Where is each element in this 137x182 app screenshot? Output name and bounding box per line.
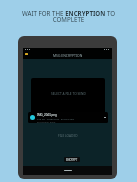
staticText: MSG ENCRYPTION <box>53 53 83 58</box>
button[interactable]: IMG_2043.png <box>28 112 108 123</box>
staticText: FILE LOADED <box>58 134 78 138</box>
staticText: 248 KB · image/png · ENCRYPTED <box>37 117 75 120</box>
button[interactable]: Encryption lock <box>25 53 28 55</box>
button[interactable]: ENCRYPT <box>64 157 80 162</box>
staticText: encryption done <box>37 120 56 123</box>
staticText: IMG_2043.png <box>37 113 57 117</box>
staticText: ENCRYPT <box>66 158 78 162</box>
staticText: SELECT A FILE TO SEND <box>51 92 86 96</box>
staticText: WAIT FOR THE ENCRYPTION TO COMPLETE <box>6 9 131 24</box>
